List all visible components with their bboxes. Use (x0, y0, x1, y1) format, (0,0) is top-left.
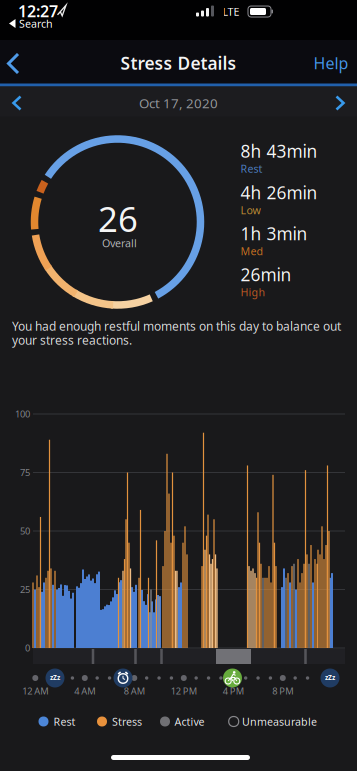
staticText: 8 AM (124, 685, 145, 697)
staticText: 0 (25, 642, 30, 654)
button[interactable]: Next day (335, 95, 345, 111)
staticText: Stress (112, 714, 142, 729)
staticText: Low (240, 203, 260, 217)
staticText: Search (19, 16, 53, 31)
staticText: 4h 26min (240, 181, 317, 204)
staticText: 75 (20, 466, 30, 479)
staticText: 12:27 (18, 0, 58, 22)
staticText: your stress reactions. (12, 332, 132, 348)
staticText: 4 AM (74, 685, 95, 697)
staticText: Active (174, 714, 204, 729)
staticText: 100 (15, 408, 30, 420)
staticText: Unmeasurable (242, 714, 317, 729)
button[interactable]: Back (6, 52, 22, 75)
staticText: Rest (53, 714, 75, 729)
staticText: 50 (20, 525, 30, 537)
staticText: 12 PM (171, 685, 197, 697)
staticText: 4 PM (223, 685, 244, 697)
staticText: Help (313, 52, 348, 74)
staticText: 26 (98, 195, 138, 241)
staticText: Rest (240, 161, 262, 176)
staticText: Overall (102, 236, 137, 250)
staticText: LTE (222, 4, 239, 19)
staticText: zZz (325, 673, 335, 682)
staticText: Stress Details (120, 51, 236, 74)
staticText: 26min (240, 263, 291, 286)
staticText: 8 PM (272, 685, 293, 697)
staticText: Oct 17, 2020 (139, 94, 218, 112)
staticText: zZz (50, 673, 60, 682)
staticText: 12 AM (22, 685, 48, 697)
button[interactable]: Back to Search (9, 16, 53, 31)
button[interactable]: Help (313, 52, 348, 74)
staticText: High (240, 285, 265, 299)
button[interactable]: Previous day (12, 95, 22, 111)
staticText: You had enough restful moments on this d… (12, 318, 341, 334)
staticText: 1h 3min (240, 222, 307, 245)
staticText: Med (240, 244, 263, 258)
staticText: 8h 43min (240, 139, 317, 162)
staticText: 25 (20, 583, 30, 596)
